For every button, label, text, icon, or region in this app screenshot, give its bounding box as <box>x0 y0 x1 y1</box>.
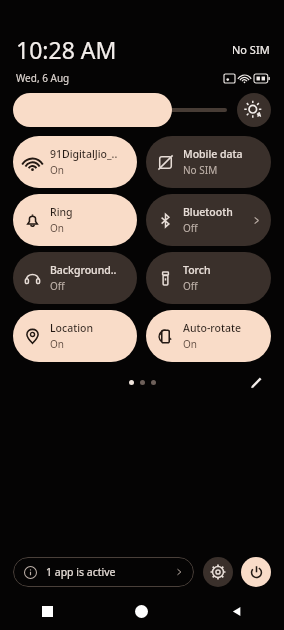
staticText: On <box>50 221 64 235</box>
staticText: 91DigitalJio_.. <box>50 147 118 161</box>
staticText: Bluetooth <box>183 205 233 219</box>
staticText: Off <box>183 221 198 235</box>
staticText: Mobile data <box>183 147 243 161</box>
button[interactable]: Location <box>13 310 137 362</box>
button[interactable] <box>13 93 227 127</box>
staticText: On <box>50 163 64 177</box>
staticText: On <box>50 337 64 351</box>
button[interactable]: Torch <box>146 252 271 304</box>
staticText: No SIM <box>232 42 270 57</box>
staticText: Background.. <box>50 263 117 277</box>
button[interactable]: Auto-rotate <box>146 310 271 362</box>
button[interactable]: Back <box>189 596 284 626</box>
staticText: Off <box>183 279 198 293</box>
button[interactable]: Power <box>241 557 271 587</box>
staticText: 1 app is active <box>46 565 116 579</box>
staticText: Torch <box>183 263 211 277</box>
staticText: Location <box>50 321 94 335</box>
button[interactable]: Auto brightness <box>237 93 271 127</box>
button[interactable]: Settings <box>203 557 233 587</box>
staticText: No SIM <box>183 163 218 177</box>
button[interactable]: Edit tiles <box>246 372 266 392</box>
staticText: Wed, 6 Aug <box>16 71 70 85</box>
button[interactable]: Ring <box>13 194 137 246</box>
button[interactable]: Mobile data <box>146 136 271 188</box>
staticText: Ring <box>50 205 73 219</box>
button[interactable]: Bluetooth <box>146 194 271 246</box>
button[interactable]: Background.. <box>13 252 137 304</box>
button[interactable]: 91DigitalJio_.. <box>13 136 137 188</box>
button[interactable]: 1 app is active <box>13 557 194 587</box>
button[interactable]: Home <box>94 596 189 626</box>
staticText: Auto-rotate <box>183 321 241 335</box>
staticText: On <box>183 337 197 351</box>
staticText: 10:28 AM <box>16 34 117 65</box>
staticText: Off <box>50 279 65 293</box>
button[interactable]: Recents <box>0 596 94 626</box>
